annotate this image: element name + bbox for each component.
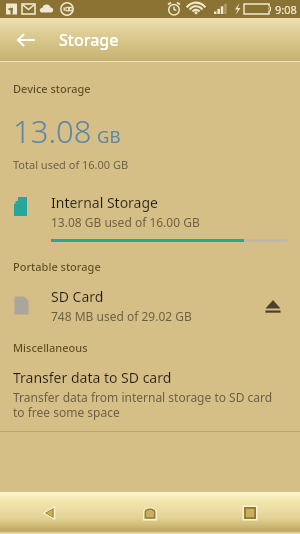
staticText: 100 [258,4,271,14]
staticText: Transfer data to SD card [13,368,172,387]
staticText: SD Card [51,287,104,306]
button[interactable]: Home [130,493,170,533]
staticText: Device storage [13,81,91,96]
button[interactable]: Back [30,493,70,533]
staticText: Transfer data from internal storage to S… [13,389,278,420]
button[interactable]: SD Card [0,287,300,324]
staticText: Miscellaneous [13,340,88,355]
staticText: 13.08 GB used of 16.00 GB [51,214,200,230]
button[interactable]: Transfer data to SD card [0,368,300,420]
button[interactable]: Internal Storage [0,193,300,242]
staticText: GB [97,125,121,148]
button[interactable]: Back [8,22,44,58]
button[interactable]: Recent apps [230,493,270,533]
staticText: 13.08 [13,110,92,152]
staticText: Internal Storage [51,193,158,212]
staticText: 9:08 [275,2,297,17]
staticText: Total used of 16.00 GB [13,157,129,172]
staticText: 748 MB used of 29.02 GB [51,308,192,324]
staticText: Portable storage [13,259,101,274]
button[interactable]: Eject SD card [256,289,290,323]
staticText: Storage [59,29,119,51]
